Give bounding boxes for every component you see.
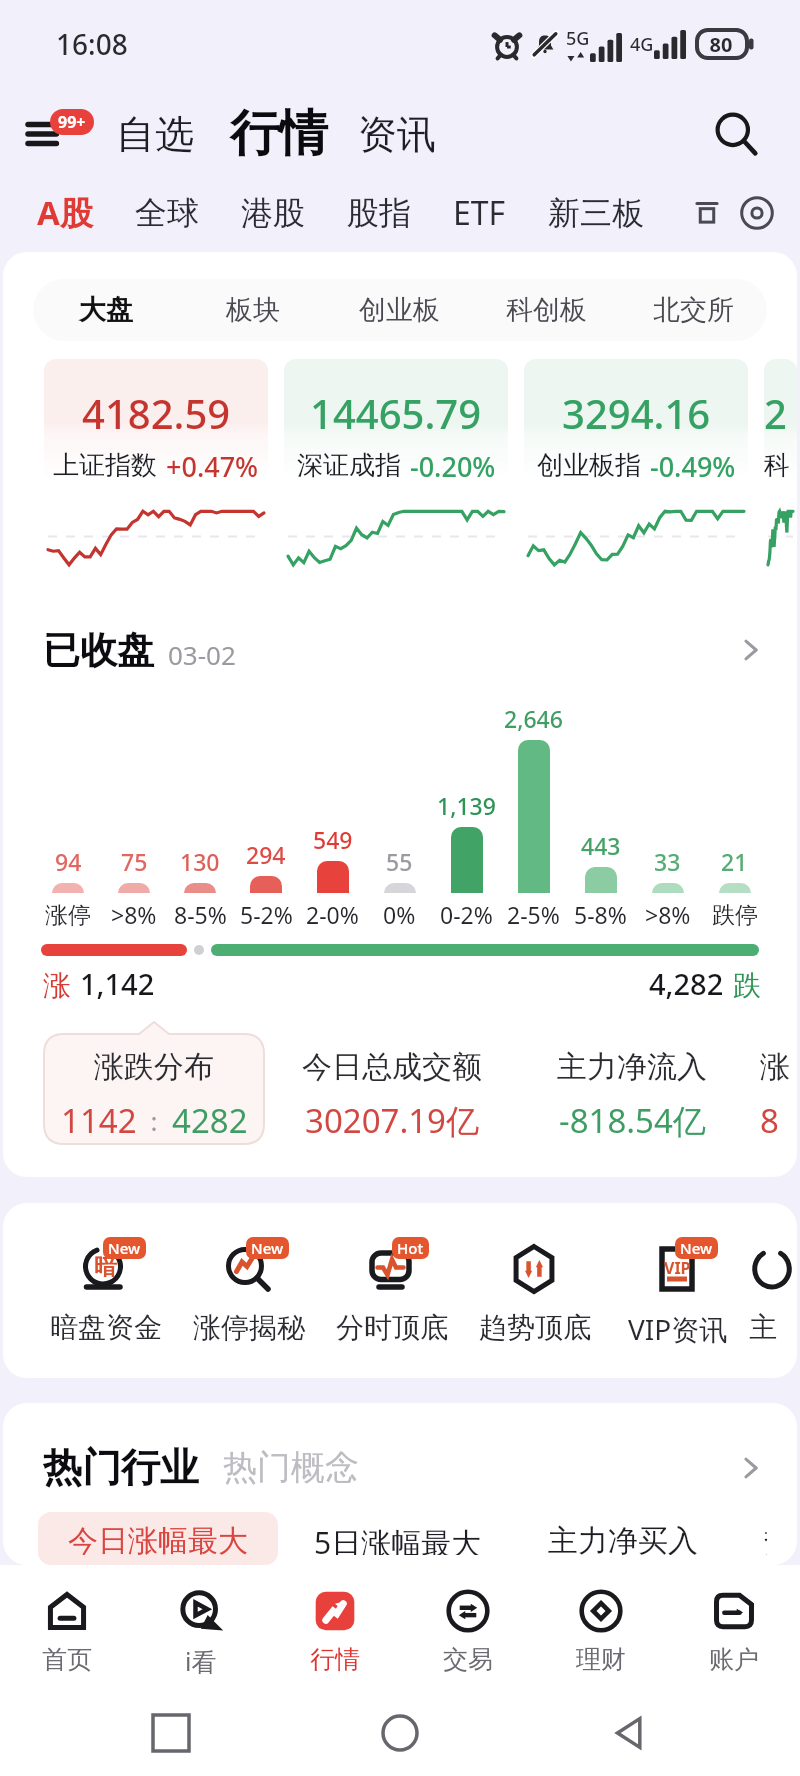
staticText: 板块 <box>226 293 280 327</box>
staticText: 549 <box>313 824 353 855</box>
button[interactable]: 股指 <box>337 187 421 239</box>
staticText: 主力净流入 <box>557 1048 707 1086</box>
button[interactable]: 账户 <box>667 1588 800 1690</box>
staticText: 涨停揭秘 <box>193 1310 305 1345</box>
staticText: 80 <box>696 31 746 58</box>
button[interactable]: 科创板 <box>473 279 620 341</box>
button[interactable]: Menu <box>26 109 98 159</box>
button[interactable]: 热门概念 <box>223 1446 359 1489</box>
button[interactable]: 涨跌分布 <box>44 1022 264 1144</box>
staticText: 首页 <box>42 1644 92 1675</box>
staticText: 0% <box>383 899 416 930</box>
staticText: 1142 <box>61 1098 137 1143</box>
button[interactable]: 热门行业 <box>43 1443 199 1492</box>
button[interactable]: 4182.59 <box>44 359 268 568</box>
button[interactable]: 行情 <box>268 1588 401 1690</box>
staticText: i看 <box>185 1644 217 1678</box>
staticText: 涨停家数 <box>760 1048 797 1086</box>
staticText: 行情 <box>310 1644 360 1675</box>
button[interactable]: Search <box>706 104 766 164</box>
button[interactable]: 创业板 <box>326 279 473 341</box>
button[interactable]: 今日总成交额 <box>280 1022 504 1144</box>
button[interactable]: 理财 <box>534 1588 667 1690</box>
staticText: 94 <box>55 846 82 877</box>
button[interactable]: 主力净买入 <box>518 1512 728 1565</box>
button[interactable]: i看 <box>134 1588 268 1690</box>
staticText: Hot <box>397 1238 424 1258</box>
staticText: 科创50 <box>764 449 797 482</box>
staticText: 主力净买入 <box>548 1522 698 1555</box>
staticText: 北交所 <box>653 293 734 327</box>
button[interactable]: 已收盘 <box>43 624 767 676</box>
staticText: 2,646 <box>504 703 563 734</box>
staticText: >8% <box>111 899 157 930</box>
staticText: 4G <box>630 32 654 57</box>
staticText: 资讯 <box>358 110 436 159</box>
button[interactable]: 全球 <box>125 187 209 239</box>
staticText: 自选 <box>116 110 194 159</box>
button[interactable]: Back <box>598 1702 660 1764</box>
staticText: 热门概念 <box>223 1446 359 1489</box>
button[interactable]: 5日涨幅最大 <box>284 1512 512 1565</box>
staticText: 热门行业 <box>43 1443 199 1492</box>
staticText: +0.47% <box>166 448 259 482</box>
staticText: 99+ <box>58 111 86 133</box>
button[interactable]: 2888.11 <box>764 359 797 568</box>
staticText: 涨跌分布 <box>94 1048 214 1086</box>
button[interactable]: Recents <box>140 1702 202 1764</box>
staticText: 2-0% <box>306 899 359 930</box>
staticText: 0-2% <box>440 899 493 930</box>
button[interactable]: 今日涨幅最大 <box>38 1512 278 1565</box>
staticText: New <box>108 1238 141 1258</box>
staticText: 今日总成交额 <box>302 1048 482 1086</box>
button[interactable]: New <box>177 1235 320 1345</box>
staticText: 33 <box>654 846 681 877</box>
button[interactable]: 港股 <box>231 187 315 239</box>
button[interactable]: A股 <box>27 184 103 241</box>
staticText: 科创板 <box>506 293 587 327</box>
staticText: 81家 <box>760 1098 797 1143</box>
staticText: 8-5% <box>174 899 227 930</box>
button[interactable]: 3294.16 <box>524 359 748 568</box>
button[interactable]: 涨停家数 <box>760 1022 797 1144</box>
button[interactable]: 自选 <box>112 104 198 165</box>
button[interactable]: Settings <box>732 188 782 238</box>
button[interactable]: Edit tabs <box>684 190 730 236</box>
button[interactable]: 北交所 <box>620 279 767 341</box>
button[interactable]: 行情 <box>226 101 332 167</box>
staticText: 账户 <box>709 1644 759 1675</box>
button[interactable]: 主力净流入 <box>520 1022 744 1144</box>
staticText: 21 <box>721 846 748 877</box>
button[interactable]: ETF <box>443 185 516 241</box>
button[interactable]: 14465.79 <box>284 359 508 568</box>
button[interactable]: 大盘 <box>33 279 179 341</box>
button[interactable]: 交易 <box>401 1588 534 1690</box>
staticText: VIP <box>664 1257 691 1279</box>
staticText: 分时顶底 <box>336 1310 448 1345</box>
button[interactable]: 资讯 <box>354 104 440 165</box>
button[interactable]: Hot <box>320 1235 463 1345</box>
staticText: 4282 <box>172 1098 248 1143</box>
button[interactable]: 暗 <box>34 1235 177 1345</box>
staticText: 5日涨幅最大 <box>314 1522 482 1555</box>
staticText: 新三板 <box>548 193 644 233</box>
button[interactable]: 新三板 <box>538 187 654 239</box>
staticText: 5-2% <box>240 899 293 930</box>
staticText: 涨停 <box>45 901 91 930</box>
staticText: New <box>251 1238 284 1258</box>
button[interactable]: 板块 <box>179 279 326 341</box>
button[interactable]: 主力 <box>749 1235 797 1345</box>
button[interactable]: VIP <box>606 1235 749 1348</box>
button[interactable]: 首页 <box>0 1588 134 1690</box>
staticText: 港股 <box>241 193 305 233</box>
staticText: 03-02 <box>168 637 236 672</box>
button[interactable]: 热力 <box>734 1512 797 1565</box>
staticText: 3294.16 <box>562 386 711 440</box>
staticText: 16:08 <box>56 25 128 63</box>
staticText: 热力 <box>764 1522 767 1555</box>
staticText: 深证成指 <box>297 449 401 482</box>
button[interactable]: Home <box>369 1702 431 1764</box>
staticText: 130 <box>180 846 220 877</box>
button[interactable]: 趋势顶底 <box>463 1235 606 1345</box>
staticText: 4,282 <box>649 964 724 1003</box>
